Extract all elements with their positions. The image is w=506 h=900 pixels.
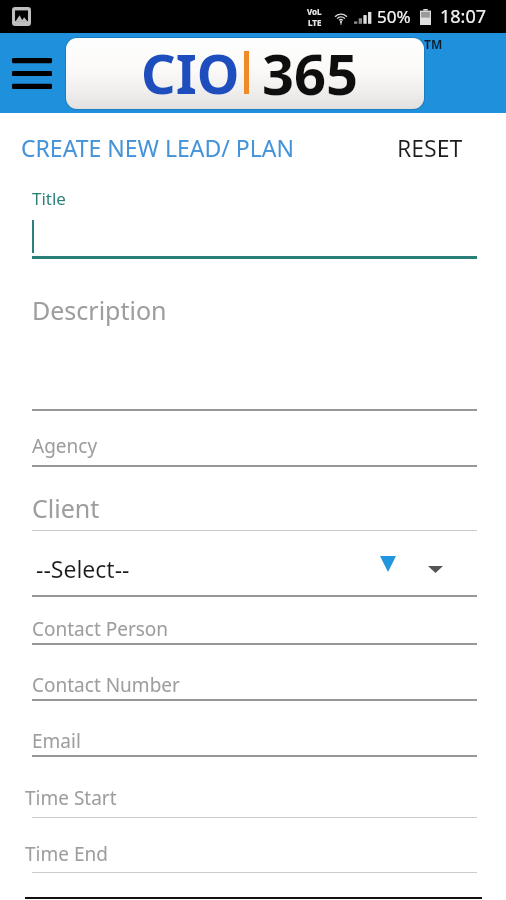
button[interactable]: CIO 365 logo [66, 38, 424, 109]
staticText: Time End [25, 841, 108, 867]
staticText: Client [32, 491, 100, 525]
staticText: 365 [262, 38, 359, 106]
staticText: CREATE NEW LEAD/ PLAN [21, 132, 294, 163]
button[interactable]: Description [0, 280, 506, 413]
button[interactable]: Contact Number [0, 659, 506, 703]
staticText: Email [32, 728, 81, 754]
button[interactable]: Time Start [0, 772, 506, 821]
button[interactable]: Agency [0, 420, 506, 469]
staticText: 50% [377, 5, 411, 28]
staticText: --Select-- [36, 553, 130, 584]
button[interactable]: RESET [390, 128, 470, 166]
staticText: LTE [308, 17, 322, 28]
staticText: Title [32, 187, 66, 210]
other: Screenshot captured [12, 7, 31, 26]
button[interactable]: Select client [0, 534, 506, 595]
staticText: Description [32, 293, 167, 327]
button[interactable]: CREATE NEW LEAD/ PLAN [14, 128, 304, 166]
staticText: TM [424, 36, 443, 52]
staticText: Time Start [25, 785, 117, 811]
staticText: Contact Number [32, 672, 180, 698]
staticText: RESET [397, 132, 463, 163]
staticText: Contact Person [32, 616, 169, 642]
staticText: 18:07 [440, 4, 487, 29]
staticText: VoL [307, 6, 322, 17]
button[interactable]: Contact Person [0, 603, 506, 647]
staticText: CIO [141, 38, 240, 107]
button[interactable]: Email [0, 715, 506, 759]
button[interactable]: Time End [0, 828, 506, 876]
button[interactable]: Client [0, 478, 506, 534]
button[interactable]: Open navigation menu [0, 33, 64, 113]
staticText: Agency [32, 433, 98, 459]
button[interactable]: Title [0, 185, 506, 260]
